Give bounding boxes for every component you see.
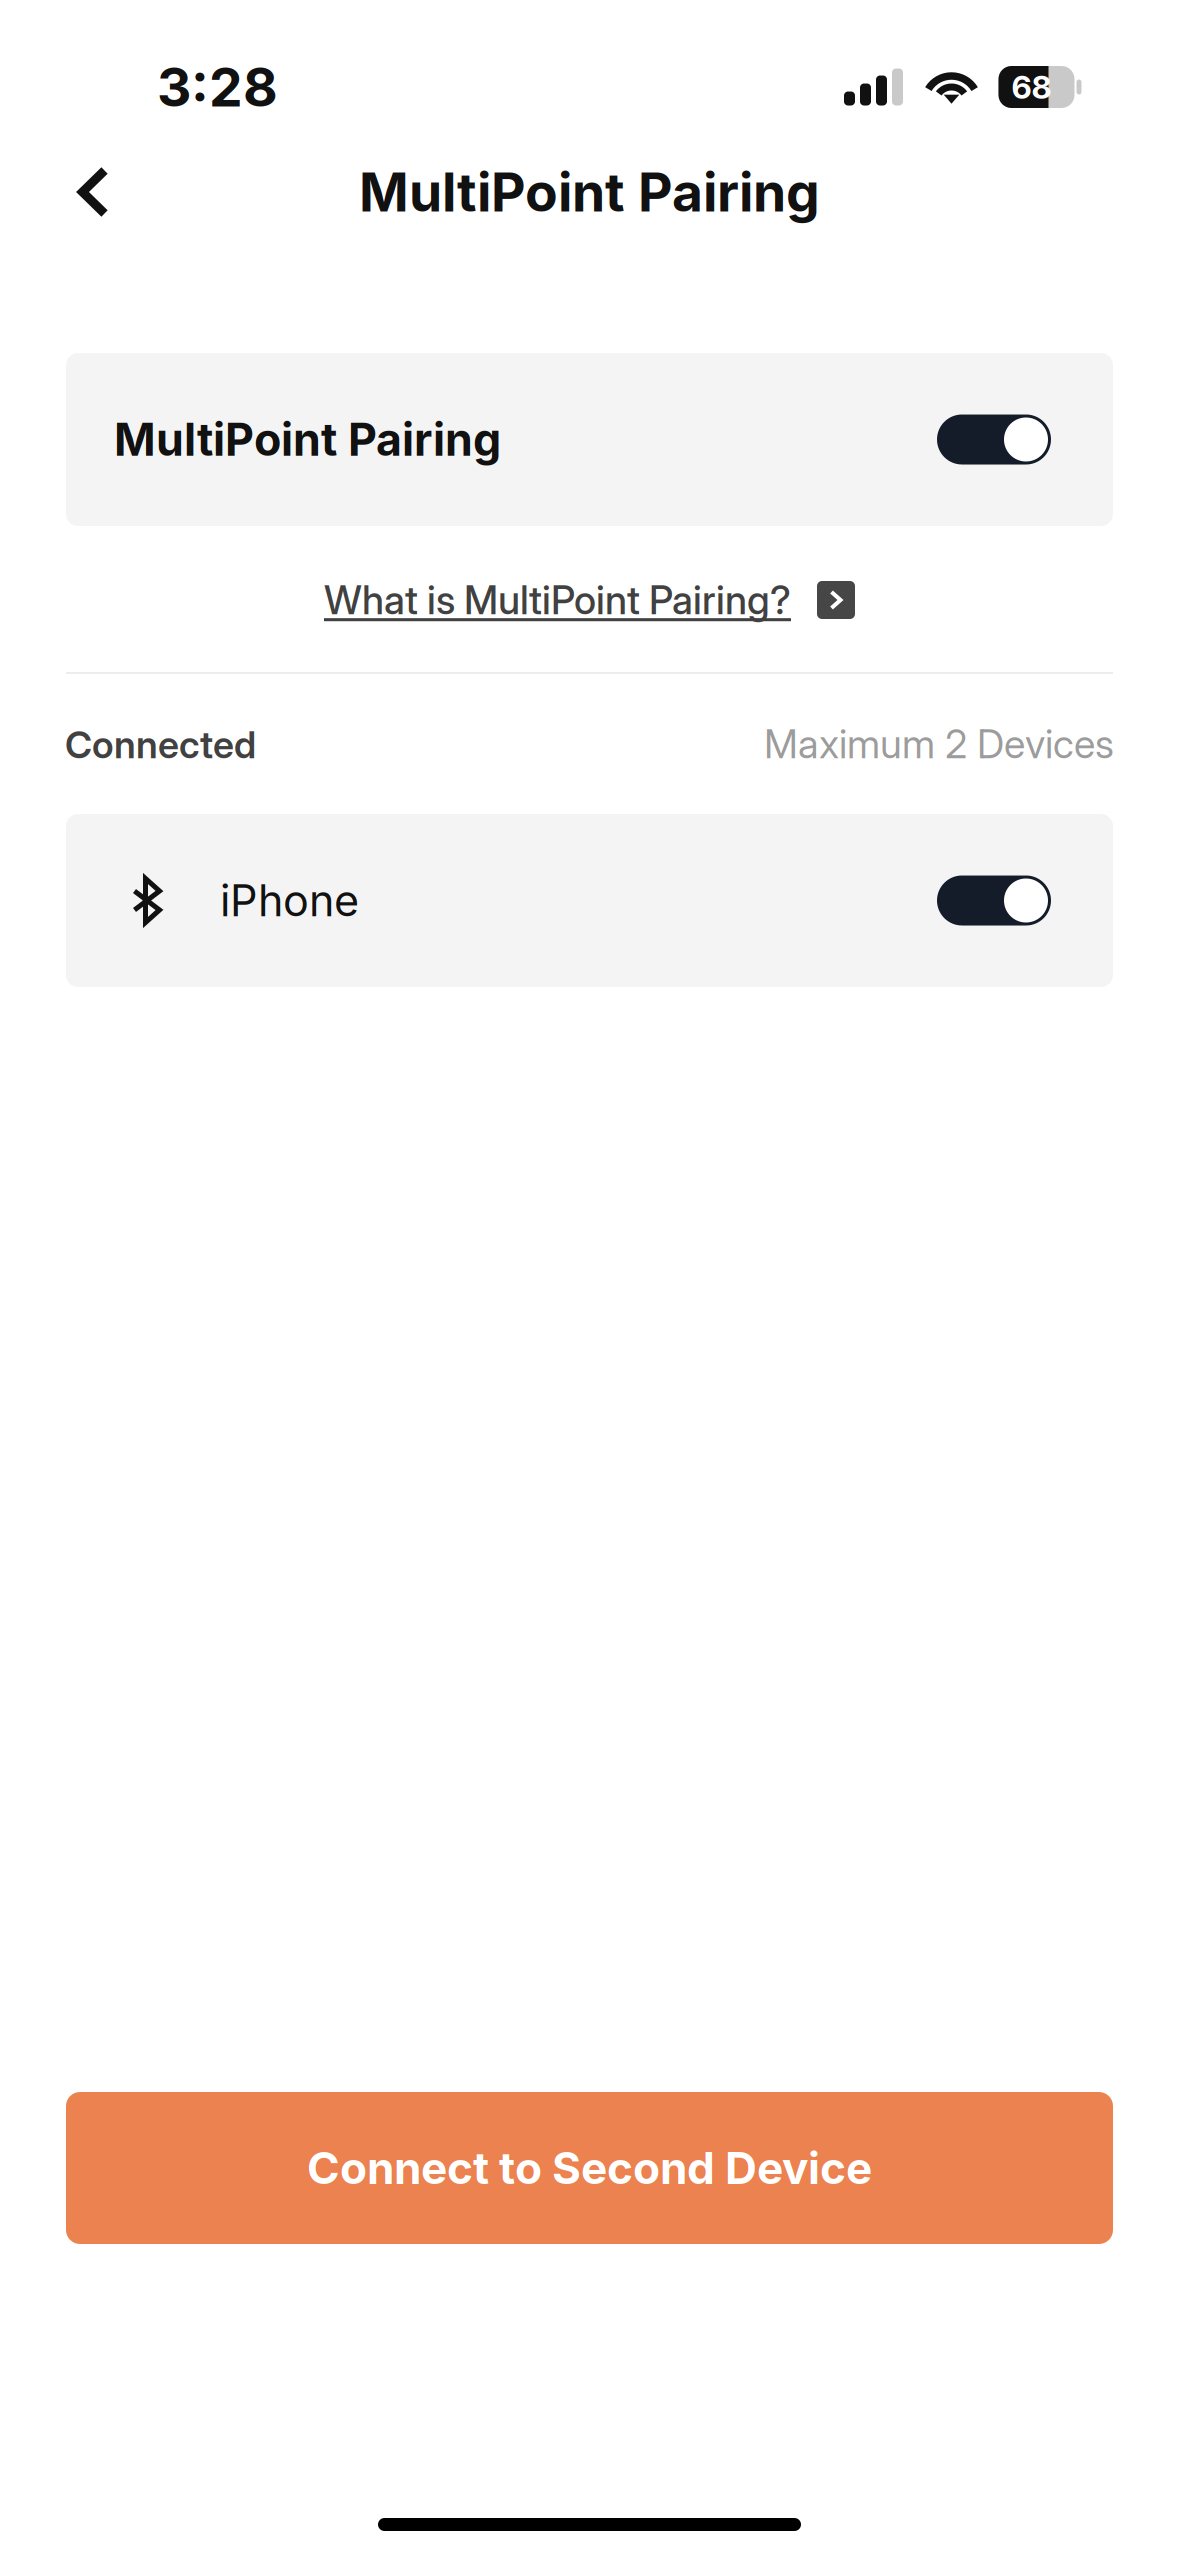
button[interactable]: Back xyxy=(0,148,149,236)
staticText: 68 xyxy=(1011,68,1051,106)
staticText: Connected xyxy=(65,722,256,767)
staticText: Maximum 2 Devices xyxy=(764,720,1114,768)
staticText: iPhone xyxy=(220,874,359,926)
staticText: Connect to Second Device xyxy=(307,2141,872,2195)
button[interactable]: Connect to Second Device xyxy=(66,2092,1113,2244)
button[interactable]: iPhone xyxy=(66,814,1113,987)
staticText: MultiPoint Pairing xyxy=(114,412,501,466)
staticText: What is MultiPoint Pairing? xyxy=(324,576,791,623)
staticText: 3:28 xyxy=(157,55,278,119)
button[interactable]: What is MultiPoint Pairing? xyxy=(324,579,855,621)
button[interactable]: MultiPoint Pairing xyxy=(66,353,1113,526)
staticText: MultiPoint Pairing xyxy=(359,160,820,224)
